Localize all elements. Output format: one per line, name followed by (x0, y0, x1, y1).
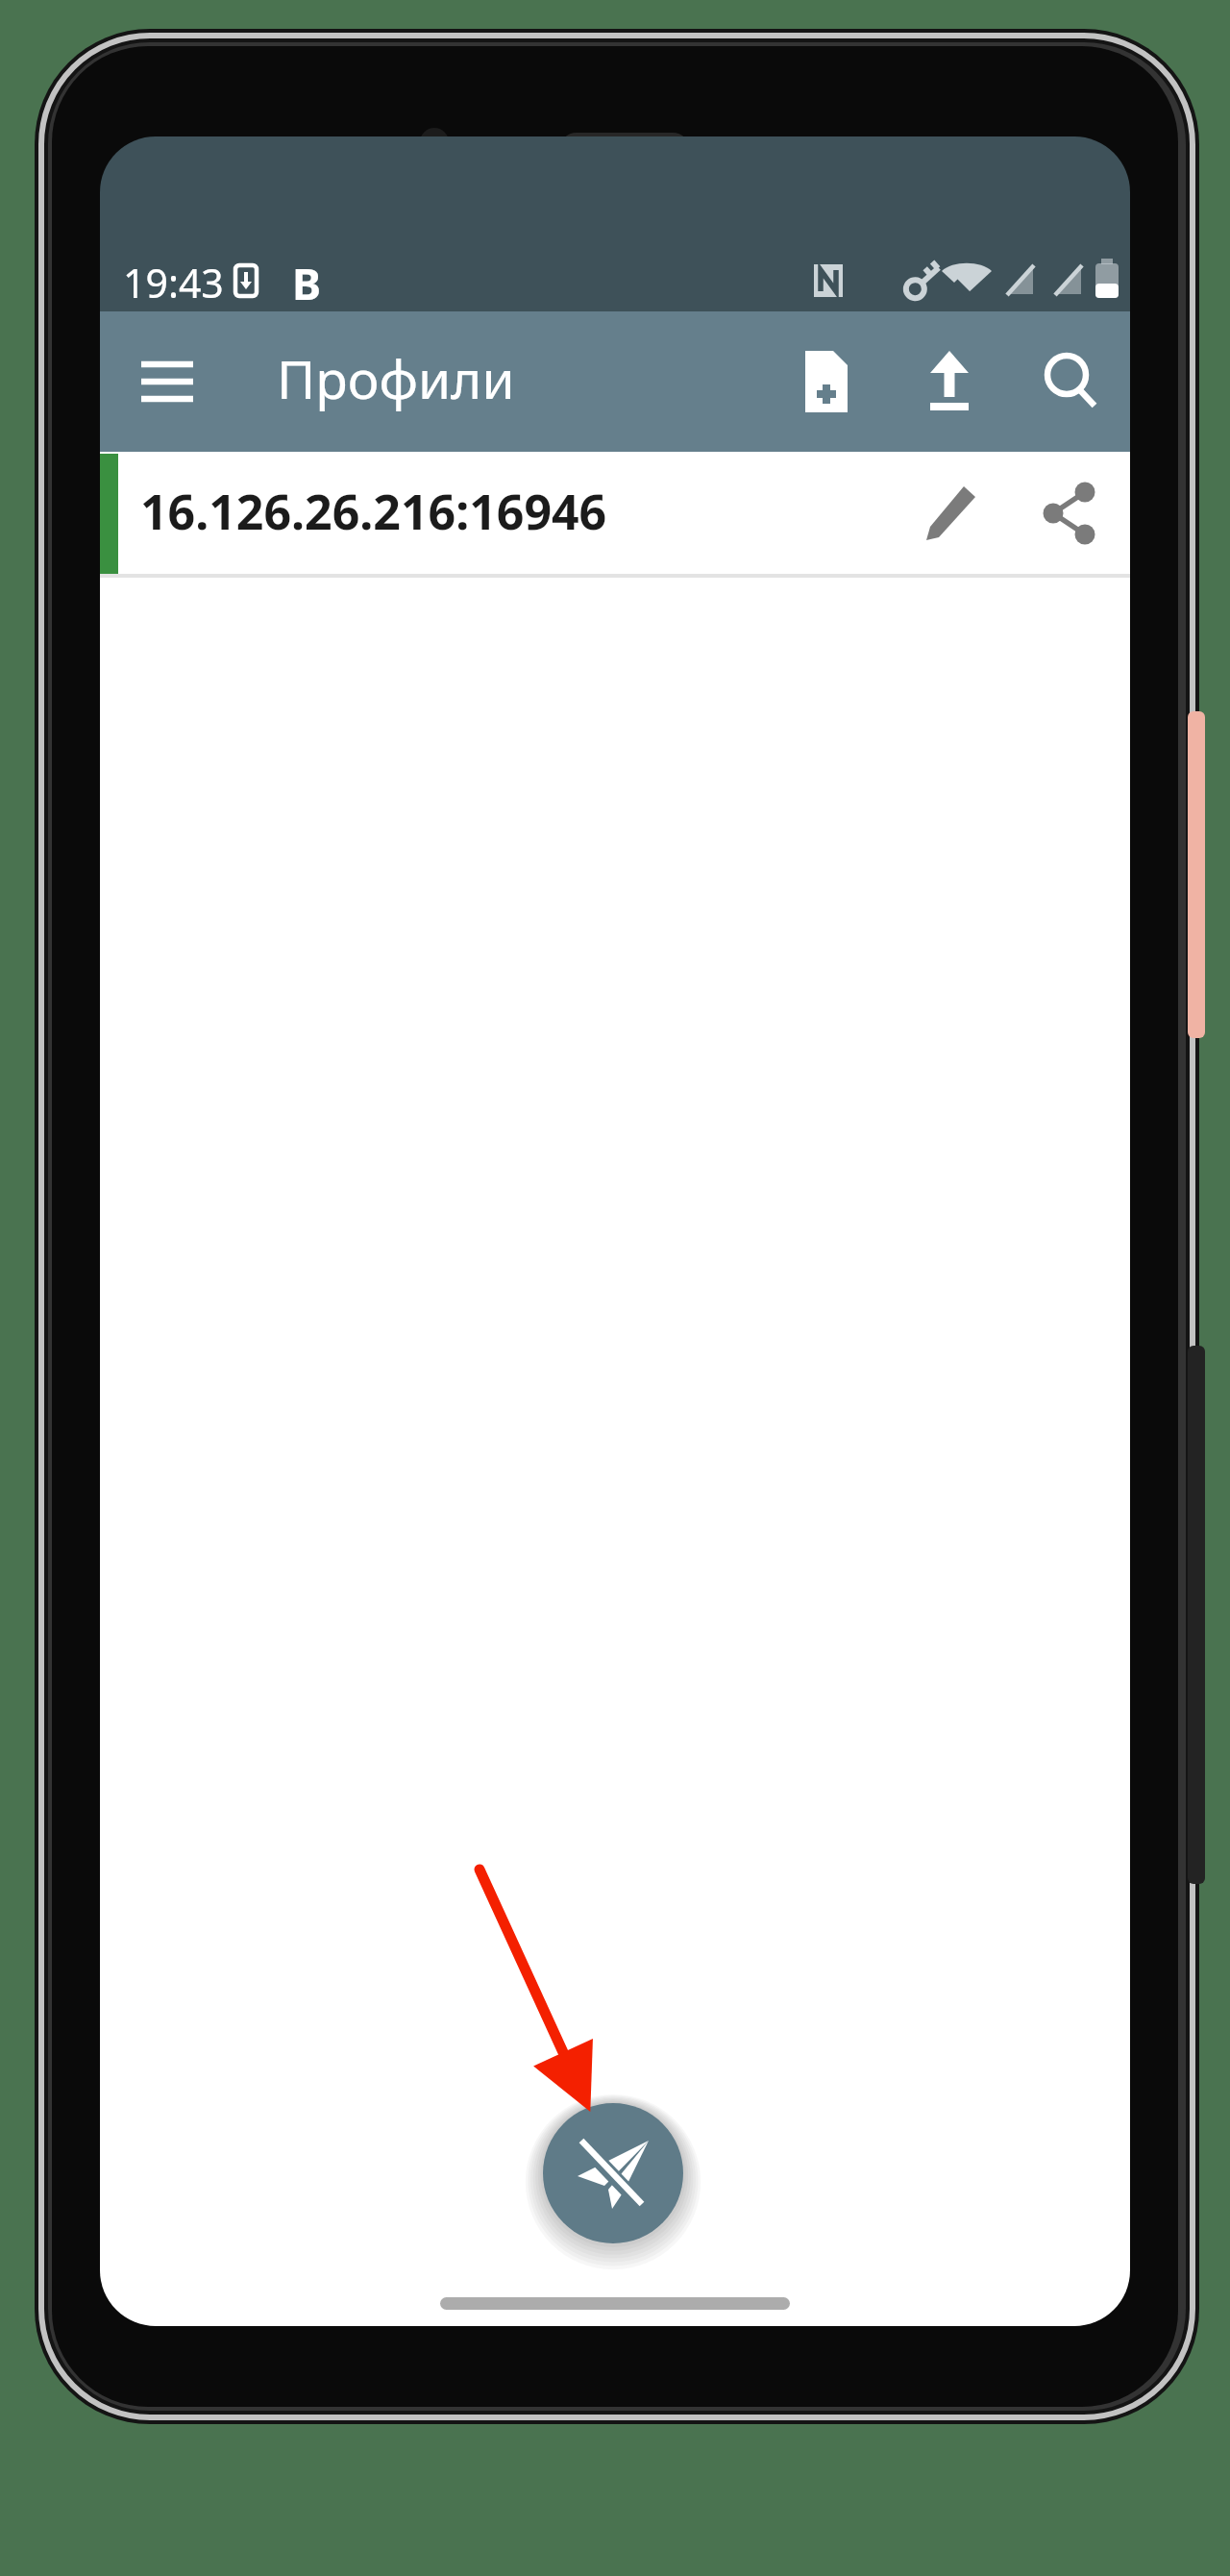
button[interactable]: Connect (542, 2102, 684, 2244)
button[interactable] (100, 454, 901, 574)
staticText: Профили (277, 342, 515, 414)
staticText: 19:43 (123, 256, 224, 310)
button[interactable]: New profile (773, 325, 880, 444)
button[interactable]: Edit profile (899, 454, 1005, 574)
staticText: В (292, 254, 321, 312)
staticText: 16.126.26.216:16946 (140, 479, 607, 544)
button[interactable]: Share profile (1017, 454, 1122, 574)
button[interactable]: Open navigation menu (115, 325, 221, 444)
button[interactable]: Import profile (896, 325, 1003, 444)
button[interactable]: Search (1017, 325, 1124, 444)
